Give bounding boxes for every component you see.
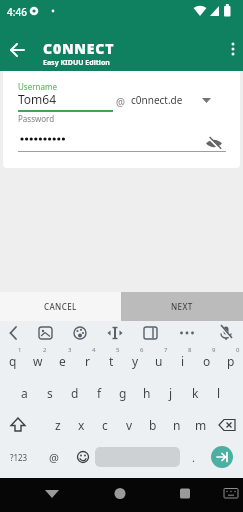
staticText: c xyxy=(102,417,108,433)
button[interactable]: d xyxy=(62,377,87,409)
button[interactable]: k xyxy=(183,377,207,409)
staticText: @ xyxy=(116,95,125,109)
staticText: g xyxy=(119,385,127,401)
button[interactable]: n xyxy=(165,409,189,441)
staticText: j xyxy=(169,385,173,401)
button[interactable] xyxy=(4,38,30,64)
staticText: Username xyxy=(18,81,57,92)
staticText: o xyxy=(203,353,211,369)
staticText: Password xyxy=(18,113,55,124)
staticText: Easy KIDUU Edition xyxy=(43,58,110,68)
staticText: a xyxy=(21,385,28,401)
button[interactable]: NEXT xyxy=(121,292,243,321)
staticText: 1 xyxy=(18,346,22,354)
staticText: 0 xyxy=(236,346,240,354)
staticText: 2 xyxy=(43,346,47,354)
button[interactable]: o xyxy=(195,345,219,377)
staticText: . xyxy=(192,450,195,465)
button[interactable] xyxy=(69,321,91,345)
staticText: CANCEL xyxy=(44,301,77,312)
button[interactable] xyxy=(222,33,242,65)
staticText: k xyxy=(192,385,199,401)
staticText: y xyxy=(132,353,139,369)
button[interactable]: l xyxy=(207,377,231,409)
button[interactable] xyxy=(95,447,180,467)
button[interactable] xyxy=(40,483,64,507)
staticText: 7 xyxy=(164,346,168,354)
button[interactable] xyxy=(173,483,197,507)
button[interactable]: u xyxy=(147,345,171,377)
button[interactable]: h xyxy=(135,377,159,409)
button[interactable]: t xyxy=(99,345,123,377)
staticText: 4:46 xyxy=(7,5,27,19)
button[interactable]: c xyxy=(93,409,117,441)
button[interactable]: q xyxy=(0,345,25,377)
staticText: b xyxy=(149,417,157,433)
staticText: z xyxy=(55,417,61,433)
staticText: q xyxy=(9,353,17,369)
staticText: n xyxy=(173,417,181,433)
button[interactable] xyxy=(176,321,198,345)
staticText: i xyxy=(181,353,185,369)
button[interactable]: i xyxy=(171,345,195,377)
button[interactable] xyxy=(0,409,46,441)
button[interactable]: j xyxy=(159,377,183,409)
button[interactable]: x xyxy=(69,409,93,441)
button[interactable]: r xyxy=(75,345,99,377)
button[interactable] xyxy=(108,483,132,507)
button[interactable]: c0nnect.de xyxy=(131,93,213,107)
staticText: 6 xyxy=(140,346,144,354)
staticText: u xyxy=(155,353,163,369)
staticText: 8 xyxy=(188,346,192,354)
button[interactable]: f xyxy=(87,377,111,409)
button[interactable]: @ xyxy=(40,441,68,473)
staticText: NEXT xyxy=(171,301,193,312)
button[interactable]: e xyxy=(50,345,75,377)
staticText: 9 xyxy=(212,346,216,354)
button[interactable]: CANCEL xyxy=(0,292,121,321)
button[interactable] xyxy=(139,321,161,345)
staticText: v xyxy=(126,417,133,433)
staticText: C0NNECT xyxy=(43,39,115,58)
button[interactable]: b xyxy=(141,409,165,441)
staticText: x xyxy=(78,417,85,433)
button[interactable]: z xyxy=(46,409,69,441)
button[interactable] xyxy=(213,409,243,441)
button[interactable]: ?123 xyxy=(2,441,36,473)
button[interactable]: y xyxy=(123,345,147,377)
button[interactable]: s xyxy=(37,377,62,409)
button[interactable] xyxy=(70,441,96,473)
button[interactable] xyxy=(214,321,236,345)
button[interactable]: a xyxy=(12,377,37,409)
staticText: 5 xyxy=(116,346,120,354)
staticText: p xyxy=(227,353,235,369)
button[interactable]: p xyxy=(219,345,243,377)
staticText: h xyxy=(143,385,151,401)
button[interactable]: . xyxy=(184,441,202,473)
staticText: r xyxy=(85,353,90,369)
staticText: 3 xyxy=(68,346,72,354)
button[interactable] xyxy=(34,321,56,345)
staticText: c0nnect.de xyxy=(131,93,183,107)
staticText: w xyxy=(33,353,43,369)
staticText: 4 xyxy=(92,346,96,354)
staticText: m xyxy=(195,417,207,433)
staticText: d xyxy=(71,385,79,401)
button[interactable] xyxy=(220,482,242,504)
button[interactable]: Tom64 xyxy=(18,91,57,107)
staticText: s xyxy=(47,385,53,401)
staticText: t xyxy=(109,353,114,369)
button[interactable]: g xyxy=(111,377,135,409)
staticText: l xyxy=(217,385,221,401)
button[interactable]: w xyxy=(25,345,50,377)
button[interactable] xyxy=(211,446,233,468)
staticText: e xyxy=(59,353,66,369)
staticText: f xyxy=(97,385,102,401)
button[interactable]: m xyxy=(189,409,213,441)
button[interactable] xyxy=(104,321,126,345)
staticText: @ xyxy=(49,450,59,465)
staticText: ?123 xyxy=(10,452,28,463)
button[interactable] xyxy=(205,137,223,151)
button[interactable] xyxy=(2,321,24,345)
button[interactable]: v xyxy=(117,409,141,441)
